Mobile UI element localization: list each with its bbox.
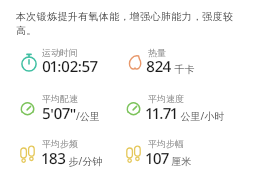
staticText: 11.71 [146,103,178,124]
staticText: 01:02:57 [42,56,98,77]
staticText: 平均速度 [148,93,184,104]
staticText: 本次锻炼提升有氧体能，增强心肺能力，强度较 [16,10,234,23]
staticText: 运动时间 [42,47,78,58]
staticText: 183 [42,148,66,169]
staticText: 热量 [148,47,166,58]
staticText: 高。 [16,24,37,37]
staticText: 824 [146,56,172,77]
staticText: 厘米 [169,154,192,168]
staticText: 步/分钟 [66,154,103,168]
staticText: 107 [146,148,169,169]
staticText: 5'07" [42,103,76,124]
staticText: 平均配速 [42,93,78,104]
staticText: 公里/小时 [178,109,225,123]
staticText: 平均步幅 [148,138,184,149]
staticText: /公里 [76,109,100,123]
staticText: 千卡 [172,62,195,76]
staticText: 平均步频 [42,138,78,149]
